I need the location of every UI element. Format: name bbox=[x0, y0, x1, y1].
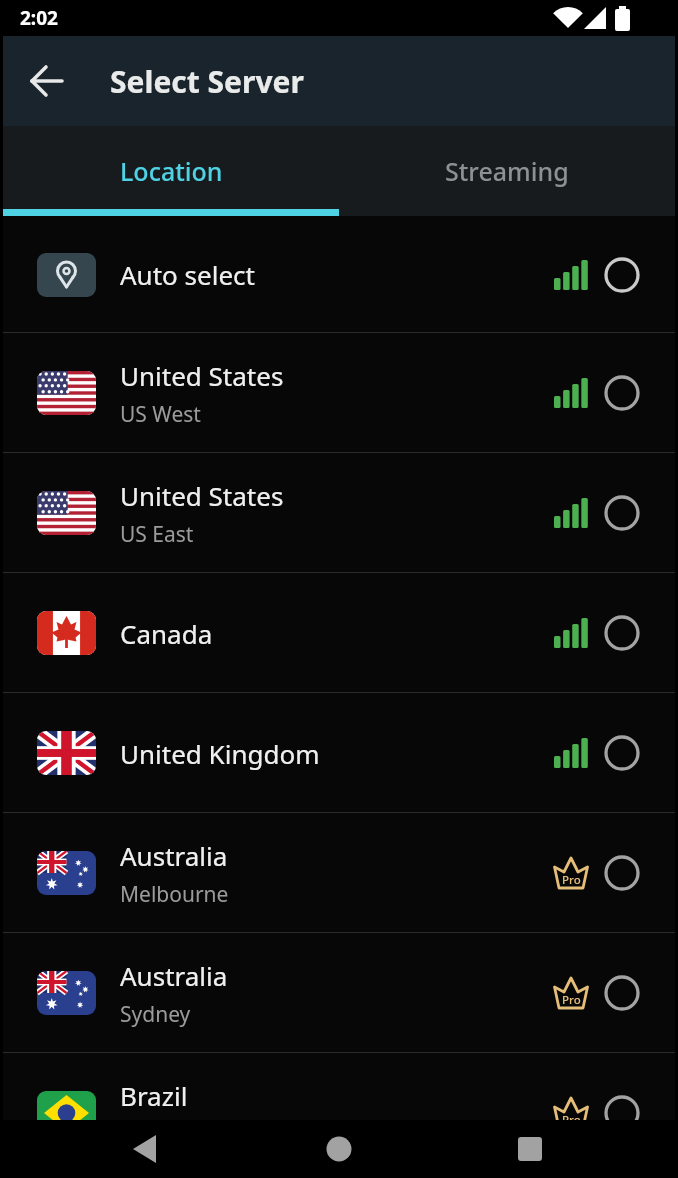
button[interactable]: Streaming bbox=[339, 126, 675, 216]
staticText: Pro bbox=[562, 992, 581, 1008]
staticText: São Paulo bbox=[120, 1120, 218, 1149]
staticText: Auto select bbox=[120, 257, 255, 292]
staticText: Select Server bbox=[110, 61, 304, 102]
staticText: Canada bbox=[120, 616, 213, 651]
button[interactable] bbox=[605, 736, 639, 770]
button[interactable] bbox=[117, 1135, 173, 1163]
staticText: United States bbox=[120, 478, 284, 513]
staticText: 2:02 bbox=[20, 5, 58, 31]
staticText: Australia bbox=[120, 838, 228, 873]
button[interactable] bbox=[605, 856, 639, 890]
button[interactable]: United States bbox=[3, 453, 675, 573]
staticText: United States bbox=[120, 358, 284, 393]
button[interactable]: United States bbox=[3, 333, 675, 453]
staticText: Sydney bbox=[120, 1000, 191, 1029]
button[interactable] bbox=[605, 976, 639, 1010]
button[interactable] bbox=[605, 1096, 639, 1130]
button[interactable]: Australia bbox=[3, 813, 675, 933]
staticText: Streaming bbox=[445, 154, 569, 188]
staticText: Pro bbox=[562, 872, 581, 888]
button[interactable] bbox=[605, 258, 639, 292]
staticText: Australia bbox=[120, 958, 228, 993]
button[interactable]: Canada bbox=[3, 573, 675, 693]
button[interactable]: Location bbox=[3, 126, 339, 216]
button[interactable]: Brazil bbox=[3, 1053, 675, 1173]
button[interactable] bbox=[502, 1135, 558, 1163]
staticText: Pro bbox=[562, 1112, 581, 1128]
staticText: US East bbox=[120, 520, 194, 549]
button[interactable] bbox=[605, 496, 639, 530]
button[interactable] bbox=[605, 376, 639, 410]
button[interactable]: United Kingdom bbox=[3, 693, 675, 813]
button[interactable]: Australia bbox=[3, 933, 675, 1053]
button[interactable] bbox=[311, 1135, 367, 1163]
button[interactable]: Auto select bbox=[3, 216, 675, 333]
staticText: US West bbox=[120, 400, 201, 429]
staticText: Location bbox=[120, 154, 223, 188]
staticText: Brazil bbox=[120, 1078, 188, 1113]
staticText: Melbourne bbox=[120, 880, 229, 909]
staticText: United Kingdom bbox=[120, 736, 320, 771]
button[interactable] bbox=[605, 616, 639, 650]
button[interactable] bbox=[19, 53, 75, 109]
